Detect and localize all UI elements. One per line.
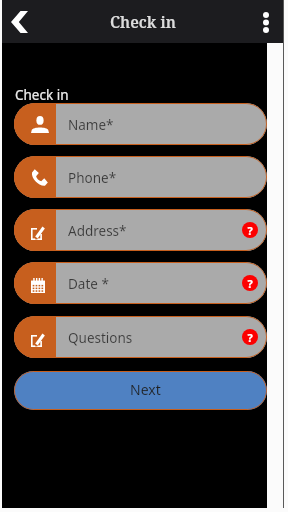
staticText: Next	[130, 380, 161, 399]
button[interactable]: Back	[2, 5, 36, 39]
staticText: Date *	[68, 275, 109, 293]
staticText: Check in	[15, 86, 69, 104]
staticText: ?	[247, 276, 253, 291]
button[interactable]: Next	[14, 371, 267, 410]
button[interactable]: Phone*	[14, 156, 267, 198]
staticText: ?	[247, 223, 253, 238]
button[interactable]: More options	[254, 10, 278, 34]
staticText: Name*	[68, 116, 114, 134]
staticText: Questions	[68, 329, 133, 347]
staticText: Phone*	[68, 169, 117, 187]
button[interactable]: Help	[242, 275, 258, 291]
staticText: ?	[247, 330, 253, 345]
button[interactable]: Date *	[14, 262, 267, 304]
button[interactable]: Help	[242, 222, 258, 238]
button[interactable]: Name*	[14, 103, 267, 145]
staticText: Address*	[68, 222, 127, 240]
staticText: Check in	[110, 11, 176, 32]
button[interactable]: Help	[242, 329, 258, 345]
button[interactable]: Questions	[14, 316, 267, 358]
button[interactable]: Address*	[14, 209, 267, 251]
